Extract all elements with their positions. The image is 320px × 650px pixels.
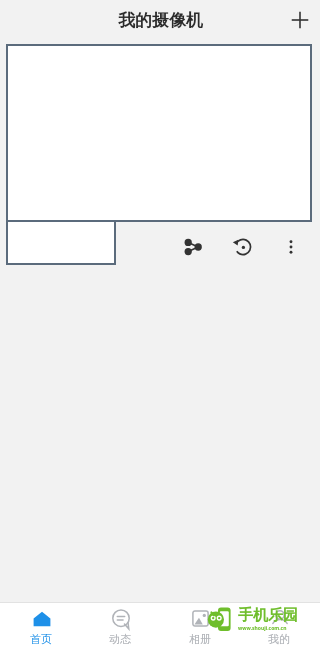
staticText: 手机乐园 bbox=[238, 606, 298, 625]
staticText: 我的摄像机 bbox=[118, 10, 203, 31]
button[interactable]: Snapshot thumbnail bbox=[6, 220, 116, 265]
button[interactable]: Share bbox=[174, 228, 212, 266]
staticText: 动态 bbox=[109, 632, 131, 646]
staticText: www.shouji.com.cn bbox=[238, 625, 287, 632]
staticText: 相册 bbox=[189, 632, 211, 646]
button[interactable]: 动态 bbox=[81, 603, 159, 650]
button[interactable]: 我的 bbox=[240, 603, 318, 650]
button[interactable]: More options bbox=[274, 230, 308, 264]
staticText: 我的 bbox=[268, 632, 290, 646]
staticText: 首页 bbox=[30, 632, 52, 646]
button[interactable]: Add camera bbox=[280, 0, 320, 40]
button[interactable]: 首页 bbox=[2, 603, 80, 650]
button[interactable]: 相册 bbox=[161, 603, 239, 650]
button[interactable]: Camera live preview bbox=[6, 44, 312, 222]
button[interactable]: Playback history bbox=[224, 228, 262, 266]
